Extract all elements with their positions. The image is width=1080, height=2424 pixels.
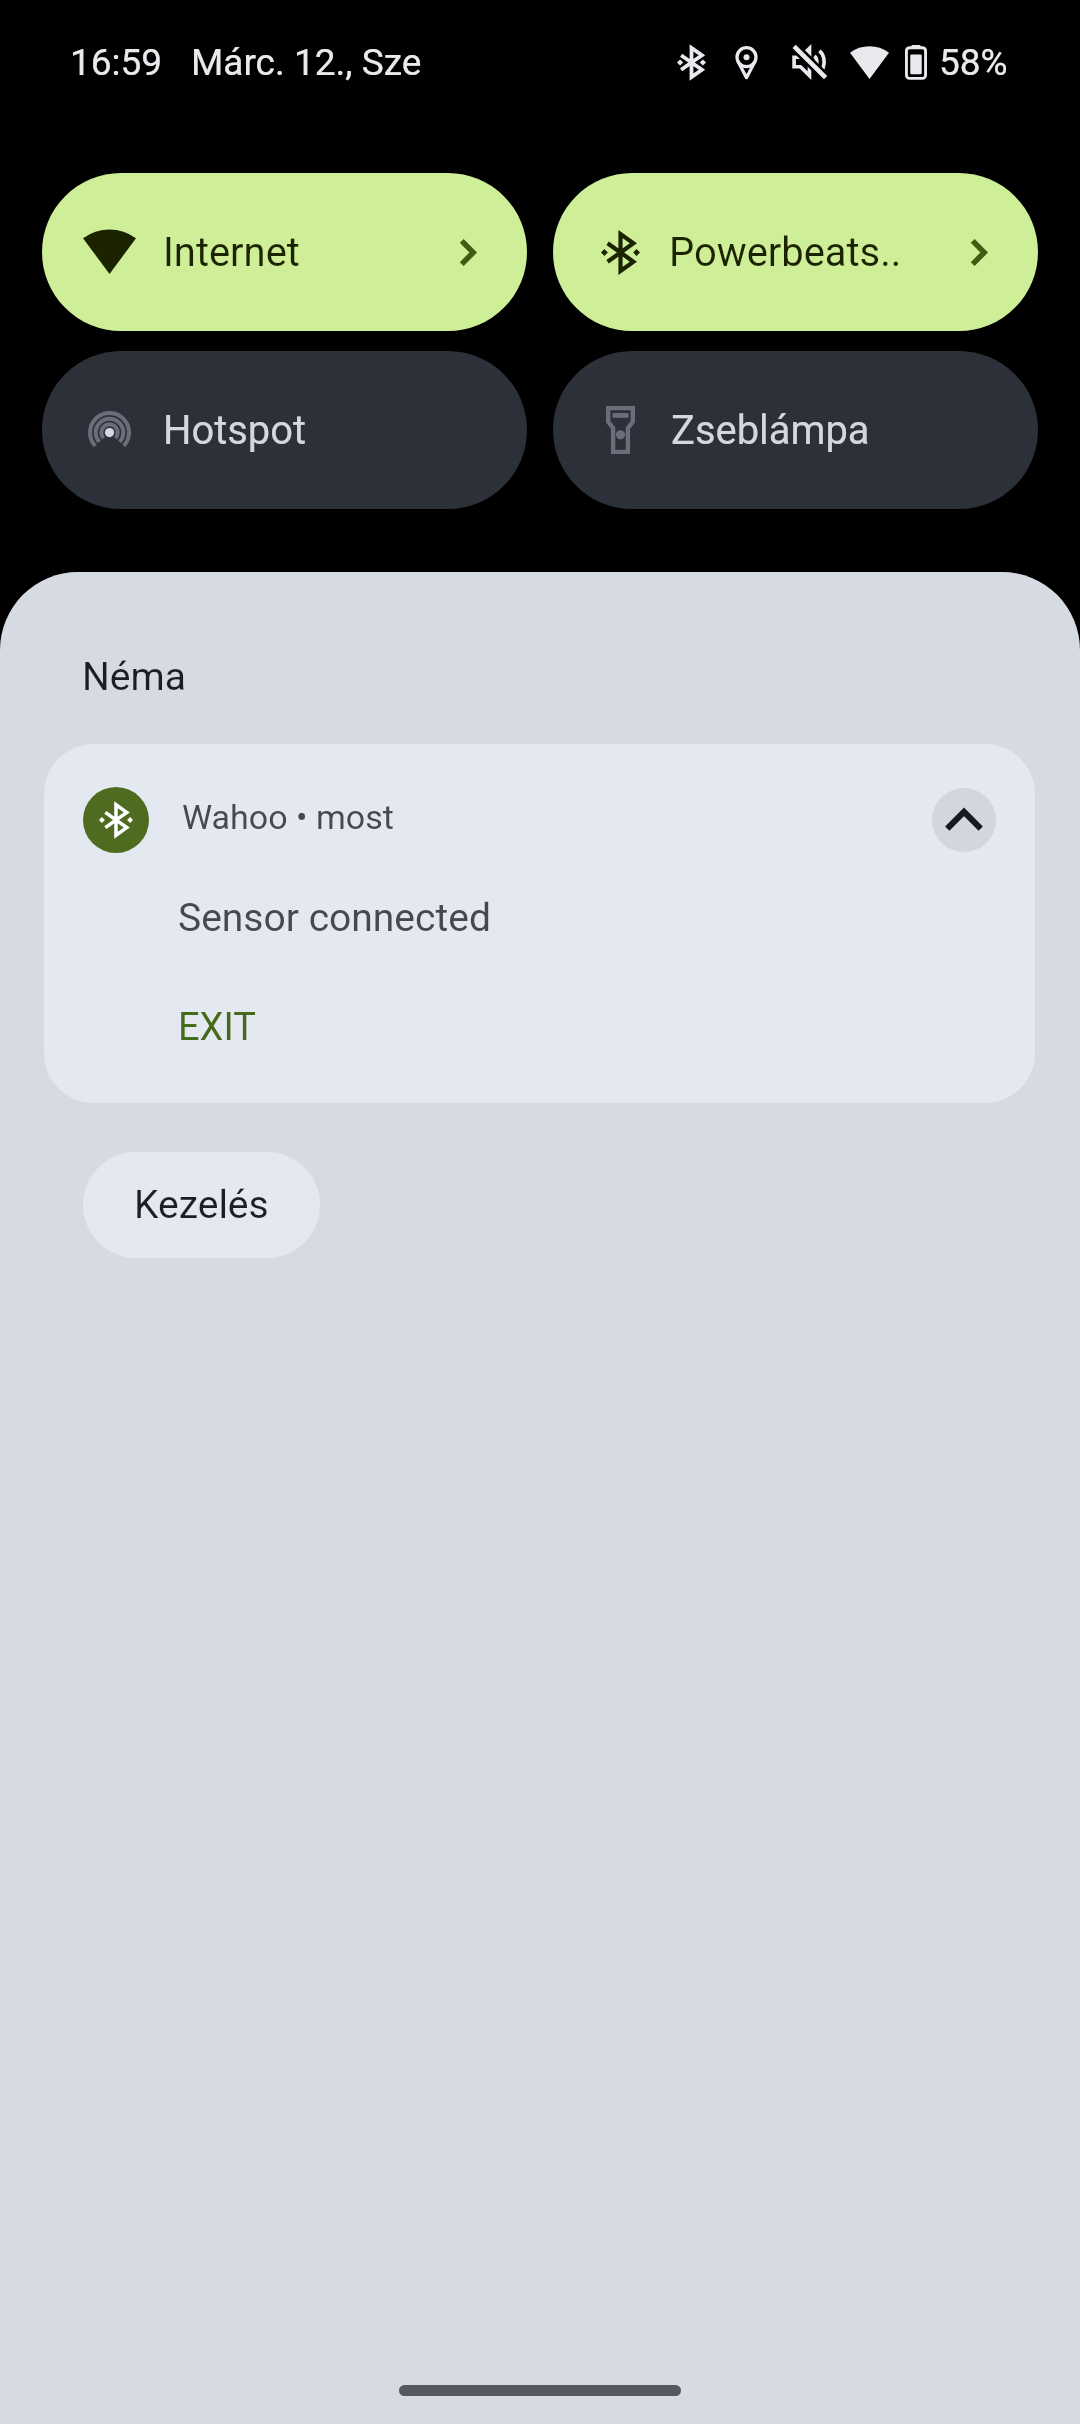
button[interactable]: Powerbeats..: [553, 173, 1038, 331]
button[interactable]: Zseblámpa: [553, 351, 1038, 509]
staticText: Kezelés: [134, 1182, 269, 1228]
staticText: Sensor connected: [178, 895, 491, 941]
staticText: 58%: [939, 41, 1008, 84]
button[interactable]: EXIT: [160, 999, 274, 1056]
staticText: 16:59: [70, 41, 163, 84]
staticText: Márc. 12., Sze: [191, 41, 422, 84]
button[interactable]: Collapse notification: [932, 788, 996, 852]
staticText: Zseblámpa: [671, 407, 870, 454]
button[interactable]: Internet: [42, 173, 527, 331]
staticText: Néma: [82, 654, 186, 700]
staticText: Powerbeats..: [669, 229, 902, 276]
staticText: Internet: [163, 229, 300, 276]
button[interactable]: Wahoo • most: [44, 744, 1035, 1103]
button[interactable]: Hotspot: [42, 351, 527, 509]
staticText: EXIT: [178, 1005, 256, 1050]
button[interactable]: Kezelés: [83, 1152, 320, 1258]
staticText: Hotspot: [163, 407, 307, 454]
staticText: Wahoo • most: [182, 797, 394, 837]
